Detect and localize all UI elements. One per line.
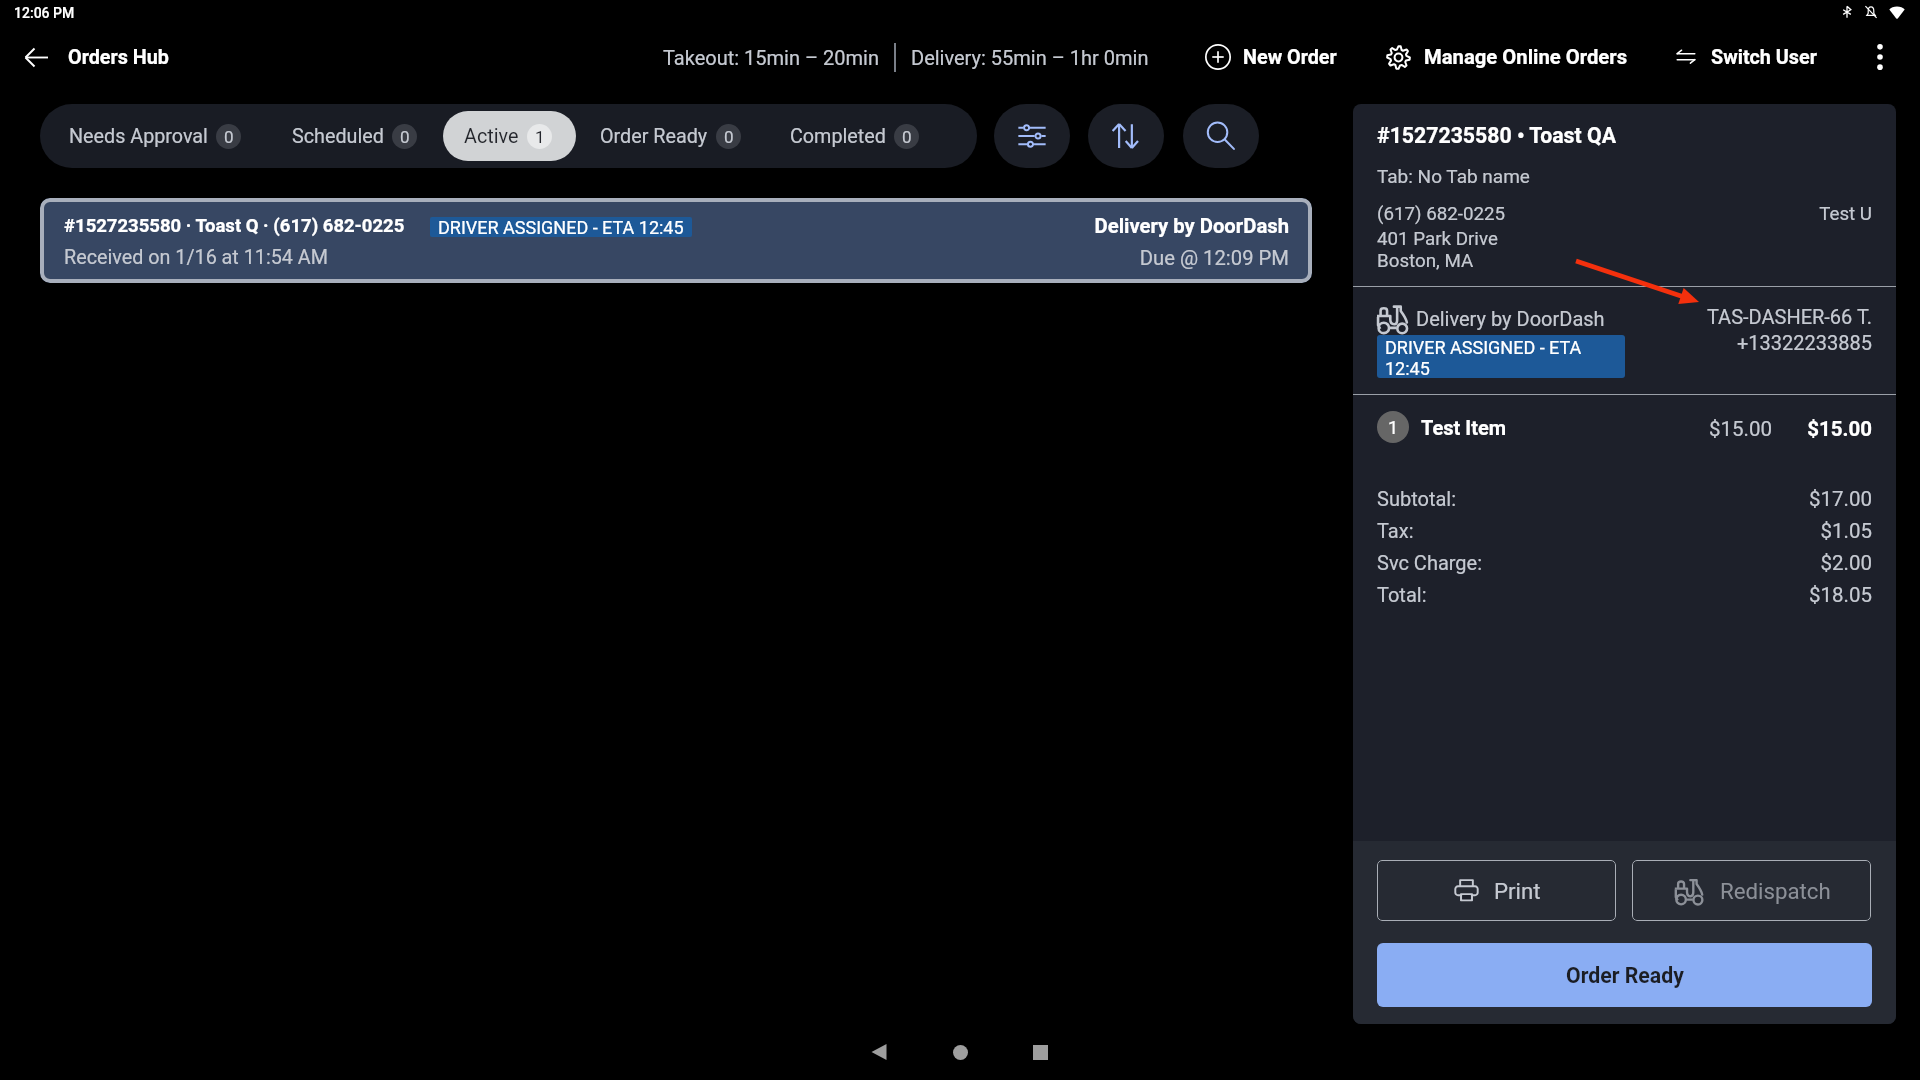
button[interactable]: Print: [1377, 860, 1616, 921]
staticText: 401 Park Drive Boston, MA: [1377, 228, 1498, 272]
staticText: 0: [400, 127, 410, 147]
staticText: $18.05: [1612, 583, 1872, 607]
button[interactable]: Search: [1183, 104, 1259, 168]
staticText: Manage Online Orders: [1424, 45, 1628, 69]
button[interactable]: Redispatch: [1632, 860, 1871, 921]
staticText: #1527235580 • Toast QA: [1377, 123, 1616, 148]
button[interactable]: Active: [443, 111, 576, 161]
staticText: Completed: [790, 125, 886, 148]
button[interactable]: Order Ready: [1377, 943, 1872, 1007]
button[interactable]: Needs Approval: [40, 111, 266, 161]
staticText: Redispatch: [1720, 878, 1831, 904]
staticText: Total:: [1377, 583, 1427, 606]
button[interactable]: Order Ready: [576, 111, 765, 161]
staticText: DRIVER ASSIGNED - ETA 12:45: [1385, 337, 1617, 378]
staticText: TAS-DASHER-66 T. +13322233885: [1612, 305, 1872, 354]
staticText: Needs Approval: [69, 125, 208, 148]
staticText: DRIVER ASSIGNED - ETA 12:45: [438, 217, 684, 237]
button[interactable]: Scheduled: [266, 111, 443, 161]
staticText: Active: [464, 125, 519, 148]
staticText: Takeout: 15min – 20min: [663, 46, 879, 69]
staticText: Order Ready: [1566, 963, 1684, 988]
staticText: Tab: No Tab name: [1377, 165, 1530, 187]
button[interactable]: Manage Online Orders: [1379, 33, 1634, 81]
staticText: $17.00: [1612, 487, 1872, 511]
staticText: $15.00: [1613, 417, 1872, 441]
staticText: Tax:: [1377, 519, 1414, 542]
staticText: $1.05: [1612, 519, 1872, 543]
staticText: Delivery: 55min – 1hr 0min: [911, 46, 1149, 69]
staticText: 0: [902, 127, 912, 147]
staticText: Switch User: [1711, 46, 1817, 69]
staticText: Print: [1494, 878, 1541, 904]
staticText: 1: [535, 127, 545, 147]
staticText: Subtotal:: [1377, 487, 1457, 510]
button[interactable]: Home: [936, 1028, 984, 1076]
button[interactable]: Back: [855, 1028, 903, 1076]
staticText: Scheduled: [292, 125, 384, 148]
staticText: Received on 1/16 at 11:54 AM: [64, 246, 328, 269]
staticText: Delivery by DoorDash: [1093, 214, 1289, 238]
button[interactable]: Recents: [1016, 1028, 1064, 1076]
button[interactable]: Switch User: [1669, 33, 1823, 81]
staticText: $15.00: [1553, 417, 1772, 441]
staticText: Order Ready: [600, 125, 708, 148]
button[interactable]: Back: [14, 33, 59, 81]
button[interactable]: Filter: [994, 104, 1070, 168]
staticText: 0: [724, 127, 734, 147]
button[interactable]: Sort: [1088, 104, 1164, 168]
staticText: (617) 682-0225: [1377, 203, 1506, 225]
button[interactable]: New Order: [1199, 33, 1343, 81]
staticText: Due @ 12:09 PM: [1093, 246, 1289, 270]
staticText: 0: [224, 127, 234, 147]
staticText: 12:06 PM: [14, 5, 75, 21]
button[interactable]: More options: [1854, 33, 1906, 81]
staticText: Test U: [1672, 203, 1872, 225]
staticText: Orders Hub: [68, 46, 169, 69]
staticText: Test Item: [1421, 416, 1507, 439]
button[interactable]: #1527235580 · Toast Q · (617) 682-0225: [40, 198, 1312, 283]
staticText: 1: [1388, 417, 1399, 438]
staticText: New Order: [1243, 46, 1337, 69]
button[interactable]: Completed: [765, 111, 977, 161]
staticText: #1527235580 · Toast Q · (617) 682-0225: [64, 215, 405, 237]
staticText: $2.00: [1612, 551, 1872, 575]
staticText: Delivery by DoorDash: [1416, 307, 1605, 330]
staticText: Svc Charge:: [1377, 551, 1483, 574]
